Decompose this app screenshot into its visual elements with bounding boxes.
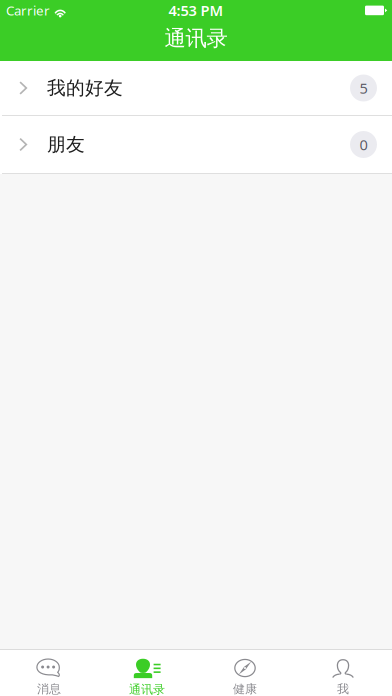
button[interactable]: 消息 (0, 650, 98, 696)
staticText: 通讯录 (164, 25, 227, 52)
staticText: 0 (359, 135, 367, 154)
staticText: 5 (359, 78, 367, 98)
button[interactable]: 通讯录 (98, 650, 196, 696)
staticText: 朋友 (47, 133, 85, 156)
staticText: 我 (337, 682, 349, 696)
staticText: 通讯录 (129, 682, 165, 696)
staticText: 健康 (233, 682, 257, 696)
button[interactable]: 我 (294, 650, 392, 696)
staticText: 我的好友 (47, 76, 123, 99)
staticText: 4:53 PM (168, 1, 223, 20)
staticText: 消息 (37, 682, 61, 696)
button[interactable]: 朋友 (0, 116, 392, 174)
button[interactable]: 我的好友 (0, 61, 392, 116)
button[interactable]: 健康 (196, 650, 294, 696)
staticText: Carrier (6, 1, 50, 19)
